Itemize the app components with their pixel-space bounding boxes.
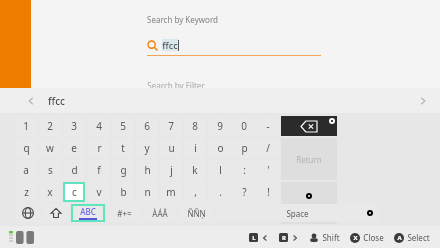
staticText: 3 xyxy=(71,119,77,133)
button[interactable]: Shift xyxy=(43,204,69,222)
button[interactable]: p xyxy=(233,138,255,158)
button[interactable]: e xyxy=(63,138,85,158)
button[interactable]: s xyxy=(39,160,61,180)
staticText: Return xyxy=(296,154,322,165)
button[interactable]: #+= xyxy=(107,204,141,222)
staticText: Space xyxy=(286,208,309,219)
button[interactable]: Space xyxy=(215,204,379,222)
button[interactable]: ÀÁÂ xyxy=(143,204,177,222)
button[interactable]: c xyxy=(63,182,85,202)
staticText: 2 xyxy=(47,119,53,133)
staticText: w xyxy=(46,141,54,155)
staticText: f xyxy=(97,163,101,177)
button[interactable]: 9 xyxy=(209,116,231,136)
staticText: l xyxy=(219,163,222,177)
staticText: r xyxy=(97,141,102,155)
staticText: n xyxy=(144,185,151,199)
staticText: 1 xyxy=(23,119,29,133)
button[interactable]: Accept xyxy=(281,182,337,224)
button[interactable]: 4 xyxy=(88,116,110,136)
button[interactable]: Previous field xyxy=(24,94,38,108)
staticText: ? xyxy=(242,185,247,199)
button[interactable]: u xyxy=(160,138,182,158)
button[interactable]: z xyxy=(15,182,37,202)
staticText: j xyxy=(170,163,173,177)
button[interactable]: . xyxy=(209,182,231,202)
button[interactable]: b xyxy=(112,182,134,202)
staticText: s xyxy=(48,163,53,177)
button[interactable]: ABC xyxy=(71,204,105,222)
button[interactable]: t xyxy=(112,138,134,158)
button[interactable]: ÑÑŅ xyxy=(179,204,213,222)
button[interactable]: v xyxy=(88,182,110,202)
button[interactable]: i xyxy=(184,138,206,158)
staticText: x xyxy=(47,185,53,199)
staticText: m xyxy=(166,185,176,199)
staticText: q xyxy=(23,141,30,155)
button[interactable]: , xyxy=(184,182,206,202)
button[interactable]: q xyxy=(15,138,37,158)
button[interactable]: o xyxy=(209,138,231,158)
staticText: Search by Keyword xyxy=(147,14,218,25)
button[interactable]: 1 xyxy=(15,116,37,136)
button[interactable]: a xyxy=(15,160,37,180)
button[interactable]: r xyxy=(88,138,110,158)
button[interactable]: k xyxy=(184,160,206,180)
button[interactable]: d xyxy=(63,160,85,180)
button[interactable]: ! xyxy=(257,182,279,202)
button[interactable]: m xyxy=(160,182,182,202)
staticText: e xyxy=(71,141,77,155)
button[interactable]: j xyxy=(160,160,182,180)
staticText: - xyxy=(266,119,270,133)
button[interactable]: f xyxy=(88,160,110,180)
button[interactable]: Next field xyxy=(416,94,430,108)
staticText: k xyxy=(192,163,198,177)
button[interactable]: w xyxy=(39,138,61,158)
button[interactable]: - xyxy=(257,116,279,136)
staticText: b xyxy=(120,185,127,199)
staticText: p xyxy=(241,141,248,155)
staticText: Select xyxy=(407,232,430,243)
button[interactable]: h xyxy=(136,160,158,180)
button[interactable]: 2 xyxy=(39,116,61,136)
button[interactable]: / xyxy=(257,138,279,158)
button[interactable]: 3 xyxy=(63,116,85,136)
staticText: 7 xyxy=(168,119,174,133)
staticText: #+= xyxy=(117,208,132,219)
staticText: v xyxy=(96,185,102,199)
staticText: 6 xyxy=(144,119,150,133)
button[interactable]: 8 xyxy=(184,116,206,136)
staticText: t xyxy=(121,141,125,155)
button[interactable]: : xyxy=(233,160,255,180)
button[interactable]: Return xyxy=(281,138,337,180)
button[interactable]: ? xyxy=(233,182,255,202)
staticText: ffcc xyxy=(48,94,65,108)
staticText: , xyxy=(194,185,197,199)
staticText: Close xyxy=(363,232,384,243)
button[interactable]: x xyxy=(39,182,61,202)
staticText: u xyxy=(168,141,175,155)
button[interactable]: l xyxy=(209,160,231,180)
staticText: Accept xyxy=(296,202,322,213)
button[interactable]: y xyxy=(136,138,158,158)
button[interactable]: 5 xyxy=(112,116,134,136)
button[interactable]: 0 xyxy=(233,116,255,136)
staticText: i xyxy=(194,141,197,155)
button[interactable]: g xyxy=(112,160,134,180)
staticText: z xyxy=(24,185,29,199)
staticText: 9 xyxy=(217,119,223,133)
button[interactable]: n xyxy=(136,182,158,202)
staticText: . xyxy=(219,185,222,199)
staticText: 0 xyxy=(241,119,247,133)
staticText: ' xyxy=(267,163,270,177)
staticText: ! xyxy=(267,185,270,199)
staticText: : xyxy=(243,163,246,177)
staticText: Shift xyxy=(322,232,340,243)
button[interactable]: Globe xyxy=(15,204,41,222)
staticText: y xyxy=(144,141,150,155)
button[interactable]: Backspace xyxy=(281,116,337,136)
button[interactable]: 7 xyxy=(160,116,182,136)
button[interactable]: 6 xyxy=(136,116,158,136)
button[interactable]: ' xyxy=(257,160,279,180)
staticText: 8 xyxy=(192,119,198,133)
